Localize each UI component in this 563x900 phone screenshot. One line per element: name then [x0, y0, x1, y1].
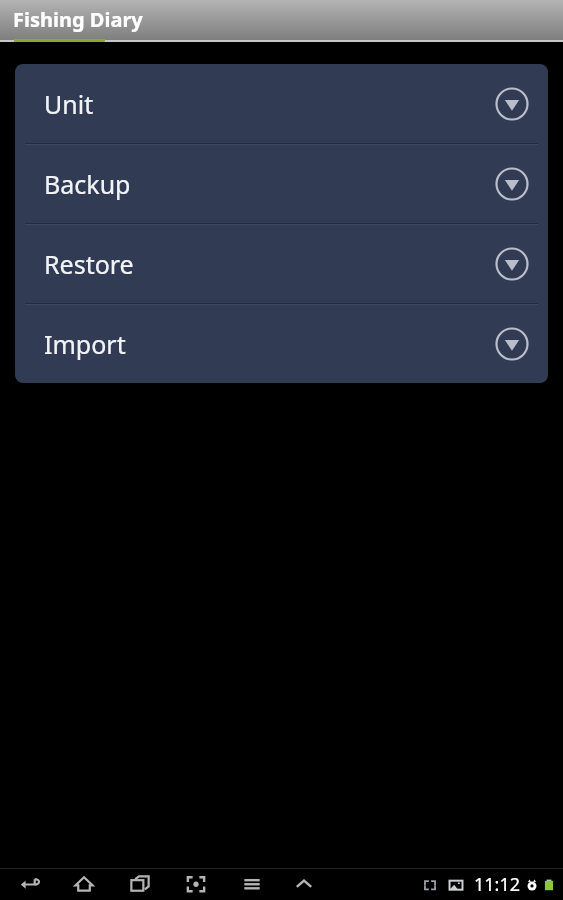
staticText: Restore — [44, 247, 492, 281]
other: Expand Backup — [492, 164, 532, 204]
other: Expand Restore — [492, 244, 532, 284]
button[interactable]: Screenshot — [182, 870, 210, 898]
staticText: Fishing Diary — [13, 6, 143, 33]
button[interactable]: Show notifications — [290, 870, 318, 898]
staticText: Unit — [44, 87, 492, 121]
staticText: 11:12 — [473, 872, 520, 897]
other: Expand Unit — [492, 84, 532, 124]
button[interactable]: Back — [14, 870, 42, 898]
button[interactable]: Menu — [238, 870, 266, 898]
button[interactable]: Import — [15, 304, 548, 383]
button[interactable]: Restore — [15, 224, 548, 303]
button[interactable]: Recent apps — [126, 870, 154, 898]
staticText: Import — [44, 327, 492, 361]
staticText: Backup — [44, 167, 492, 201]
other: Expand Import — [492, 324, 532, 364]
button[interactable]: Home — [70, 870, 98, 898]
button[interactable]: Unit — [15, 64, 548, 143]
button[interactable]: Backup — [15, 144, 548, 223]
